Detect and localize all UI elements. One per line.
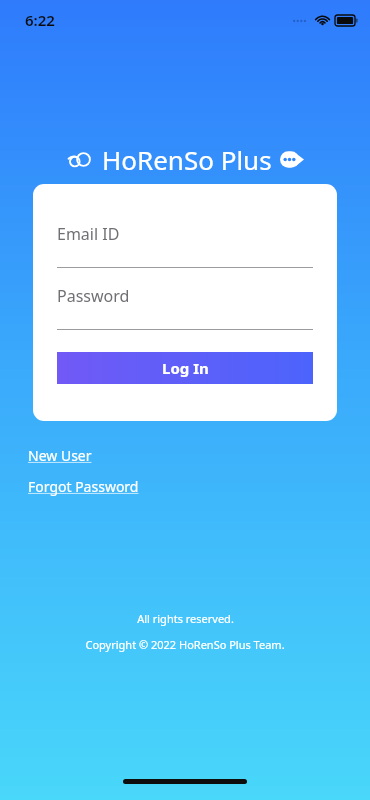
staticText: Password [57,285,130,307]
staticText: Forgot Password [28,477,139,496]
button[interactable]: Email ID [57,223,313,245]
staticText: New User [28,446,92,465]
staticText: 6:22 [25,10,55,30]
staticText: HoRenSo Plus [102,142,272,177]
staticText: All rights reserved. [137,611,234,626]
staticText: Email ID [57,223,120,245]
button[interactable]: Log In [57,352,313,384]
staticText: Log In [162,358,209,378]
staticText: Copyright © 2022 HoRenSo Plus Team. [85,637,285,652]
button[interactable]: Password [57,285,313,307]
button[interactable]: New User [28,446,92,465]
button[interactable]: Forgot Password [28,477,139,496]
